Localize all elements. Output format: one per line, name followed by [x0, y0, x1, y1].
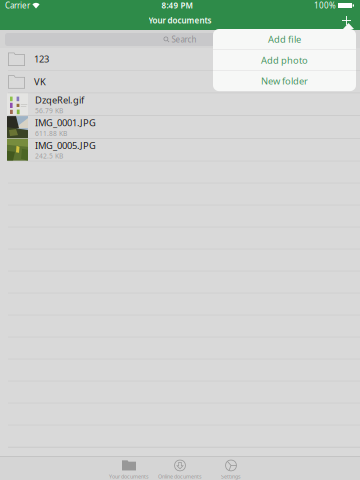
button[interactable]: 123 — [0, 48, 360, 70]
button[interactable]: New folder — [213, 71, 356, 91]
staticText: Search — [171, 34, 196, 45]
staticText: Your documents — [109, 473, 149, 480]
button[interactable]: DzqeRel.gif — [0, 93, 360, 115]
button[interactable]: Add file — [213, 29, 356, 49]
staticText: Carrier — [5, 0, 30, 11]
button[interactable]: VK — [0, 71, 360, 93]
staticText: Your documents — [148, 15, 211, 26]
staticText: 123 — [34, 53, 49, 65]
button[interactable]: Settings — [205, 456, 256, 480]
button[interactable]: Search — [163, 32, 196, 47]
staticText: Online documents — [158, 473, 202, 480]
staticText: Add photo — [261, 54, 308, 66]
staticText: Settings — [221, 473, 241, 480]
staticText: 100% — [314, 0, 336, 11]
button[interactable]: Your documents — [103, 456, 154, 480]
staticText: 611.88 KB — [35, 129, 67, 138]
staticText: 242.5 KB — [35, 152, 63, 160]
staticText: 56.79 KB — [35, 106, 63, 115]
button[interactable]: Add — [338, 12, 360, 29]
staticText: New folder — [261, 75, 308, 87]
button[interactable]: IMG_0005.JPG — [0, 139, 360, 161]
button[interactable]: Online documents — [154, 456, 205, 480]
button[interactable]: Add photo — [213, 50, 356, 70]
staticText: IMG_0001.JPG — [35, 116, 96, 129]
staticText: VK — [34, 75, 46, 88]
button[interactable]: IMG_0001.JPG — [0, 116, 360, 138]
staticText: DzqeRel.gif — [35, 94, 84, 106]
staticText: 8:49 PM — [161, 0, 192, 11]
staticText: Add file — [268, 33, 301, 45]
staticText: IMG_0005.JPG — [35, 139, 96, 152]
